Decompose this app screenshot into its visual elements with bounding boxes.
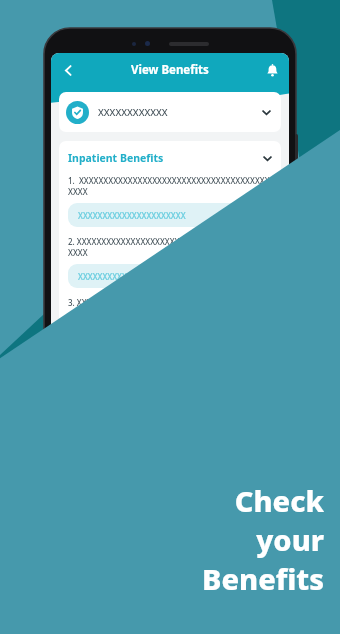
button[interactable]: XXXXXXXXXXXXXXXXXXXXXX <box>68 264 272 288</box>
button[interactable]: Back <box>55 57 81 83</box>
button[interactable]: XXXXXXXXXXXX <box>59 92 281 132</box>
staticText: 1. XXXXXXXXXXXXXXXXXXXXXXXXXXXXXXXXXXXXX… <box>68 175 272 197</box>
staticText: 2. XXXXXXXXXXXXXXXXXXXXXXXXXXXXXXXXXXXXX… <box>68 236 272 258</box>
staticText: XXXXXXXXXXXXXXXXXXXXXX <box>78 271 186 282</box>
staticText: your <box>256 520 324 559</box>
button[interactable]: XXXXXXXXXXXXXXXXXXXXXX <box>68 203 272 227</box>
button[interactable]: Inpatient Benefits <box>68 151 272 165</box>
button[interactable]: Notifications <box>260 58 284 82</box>
staticText: Inpatient Benefits <box>68 151 164 165</box>
staticText: XXXXXXXXXXXXXXXXXXXXXX <box>78 210 186 221</box>
staticText: XXXXXXXXXXXX <box>98 106 168 119</box>
staticText: Benefits <box>202 559 324 598</box>
staticText: View Benefits <box>131 62 209 78</box>
staticText: Check <box>234 481 324 520</box>
staticText: 3. XXXXXXXXXXXXXXXXXXX <box>68 297 170 308</box>
